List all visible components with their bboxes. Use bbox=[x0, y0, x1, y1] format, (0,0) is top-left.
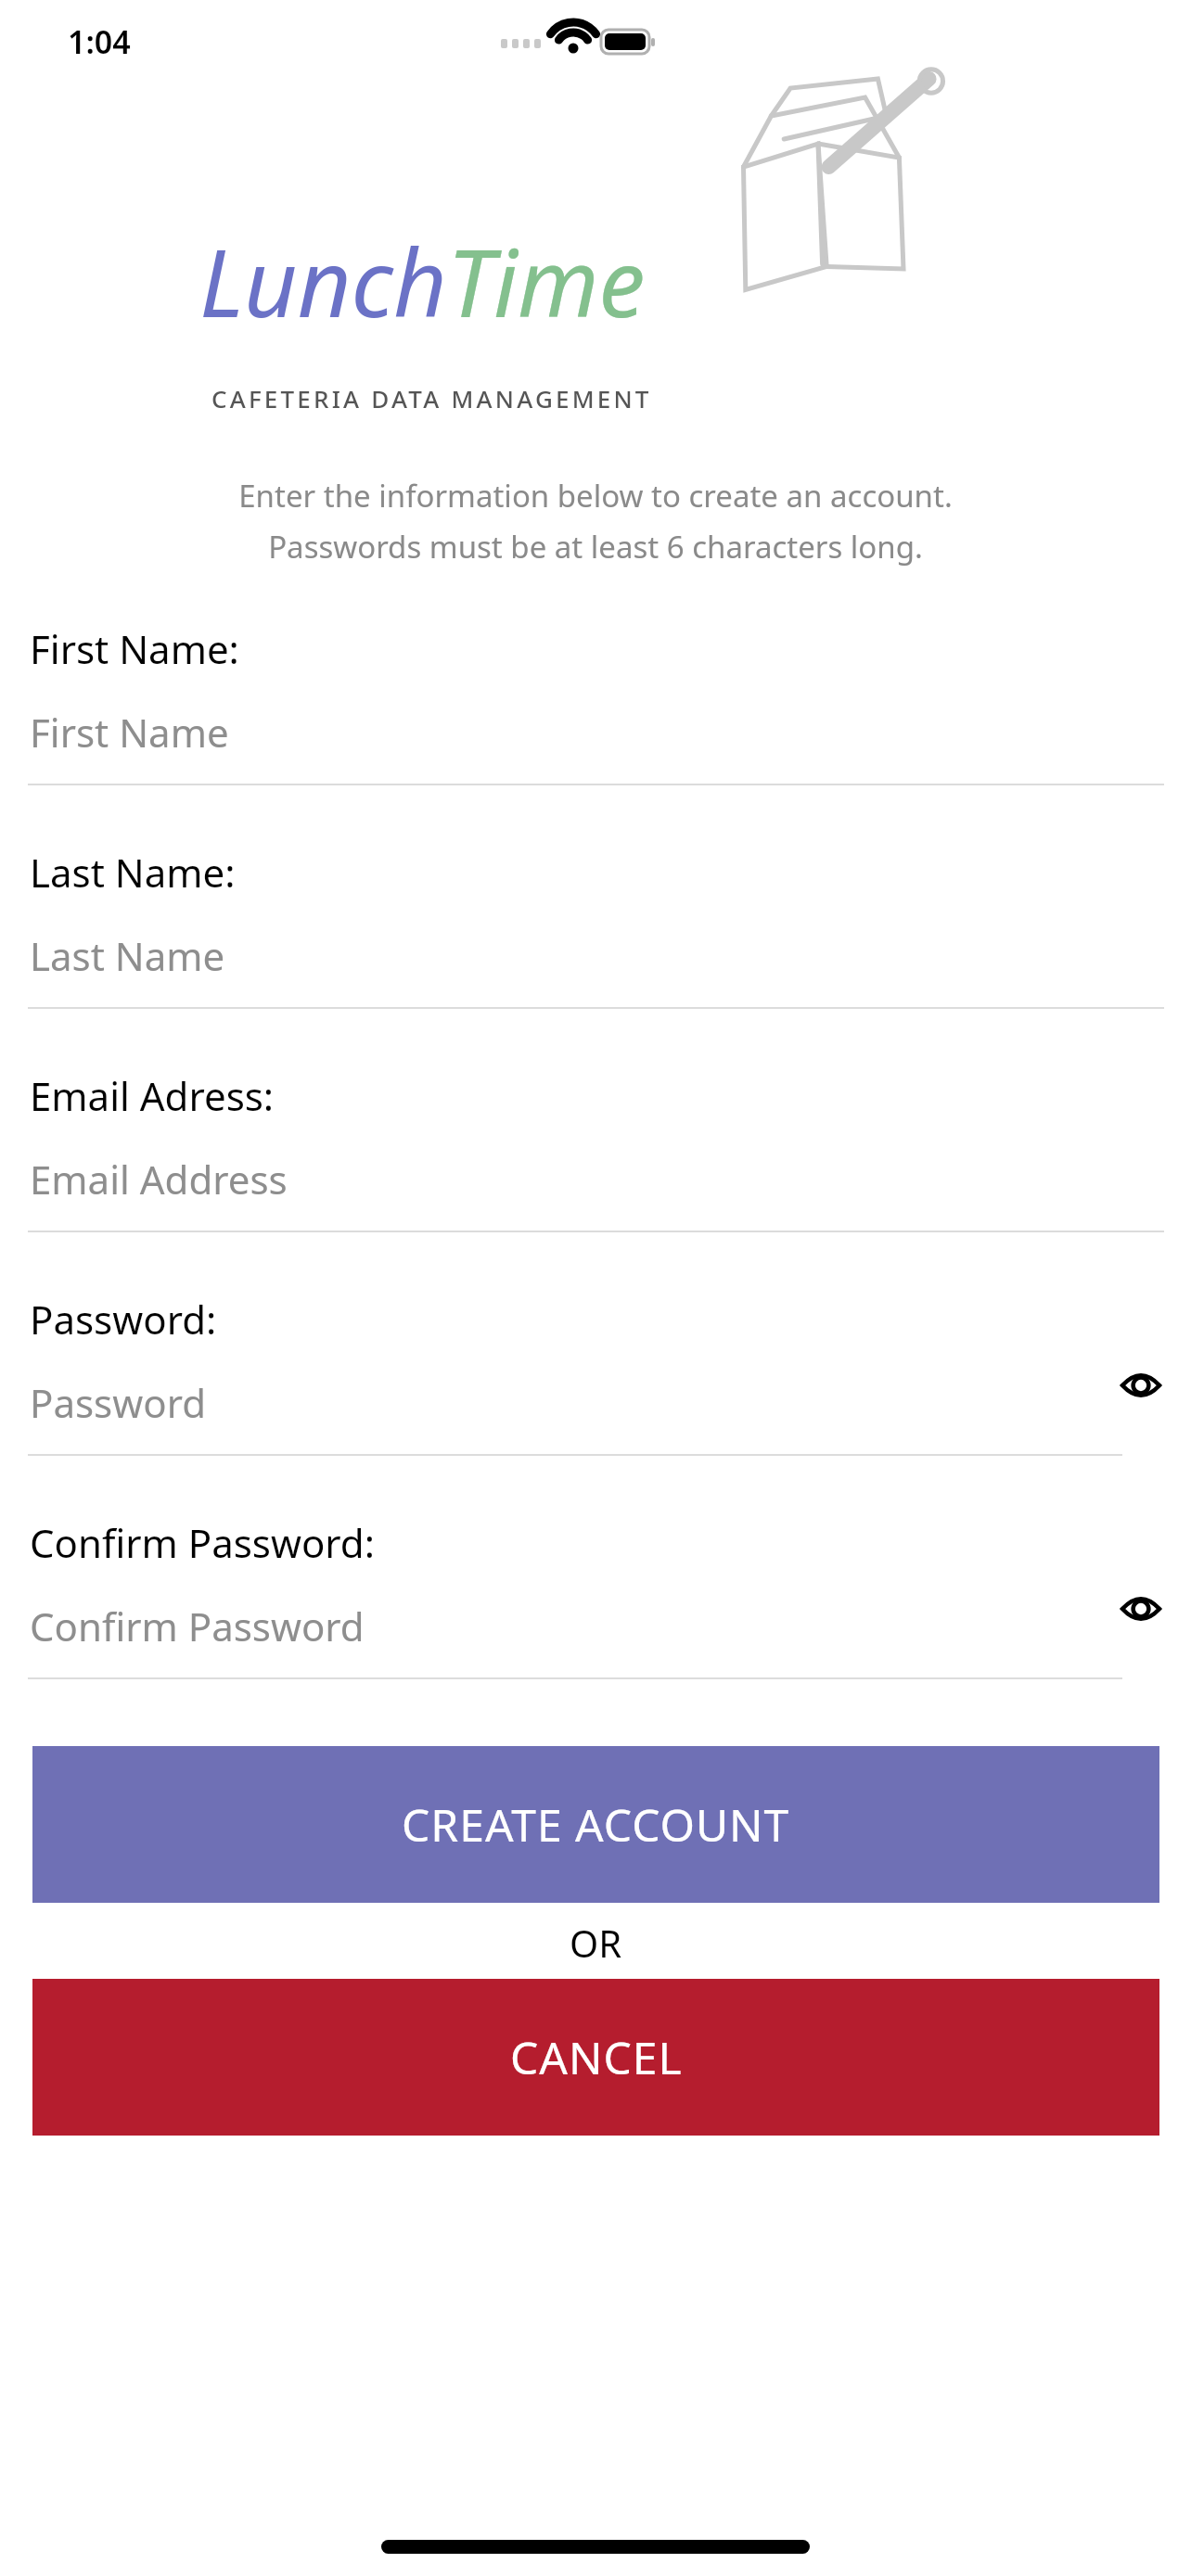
staticText: Confirm Password bbox=[30, 1600, 365, 1652]
button[interactable]: Confirm Password: bbox=[0, 1509, 1191, 1732]
staticText: Lunch bbox=[199, 218, 447, 344]
staticText: CANCEL bbox=[510, 2027, 683, 2087]
staticText: 1:04 bbox=[68, 20, 131, 63]
staticText: First Name: bbox=[30, 622, 239, 675]
staticText: Enter the information below to create an… bbox=[238, 475, 953, 516]
staticText: CAFETERIA DATA MANAGEMENT bbox=[211, 382, 652, 414]
staticText: First Name bbox=[30, 706, 229, 759]
button[interactable]: Last Name: bbox=[0, 838, 1191, 1062]
staticText: Last Name: bbox=[30, 846, 236, 899]
button[interactable]: CREATE ACCOUNT bbox=[32, 1746, 1159, 1903]
staticText: CREATE ACCOUNT bbox=[402, 1794, 790, 1855]
button[interactable]: Password: bbox=[0, 1285, 1191, 1509]
staticText: Last Name bbox=[30, 929, 225, 982]
button[interactable]: CANCEL bbox=[32, 1979, 1159, 2136]
staticText: Time bbox=[447, 218, 646, 344]
staticText: Email Address bbox=[30, 1153, 288, 1205]
button[interactable]: Email Adress: bbox=[0, 1062, 1191, 1285]
button[interactable]: Show password bbox=[1104, 1572, 1178, 1646]
button[interactable]: Show password bbox=[1104, 1348, 1178, 1422]
button[interactable]: First Name: bbox=[0, 615, 1191, 838]
staticText: Passwords must be at least 6 characters … bbox=[268, 526, 923, 567]
staticText: Password bbox=[30, 1376, 206, 1429]
staticText: Password: bbox=[30, 1293, 217, 1345]
staticText: Email Adress: bbox=[30, 1069, 275, 1122]
staticText: OR bbox=[570, 1918, 622, 1968]
staticText: Confirm Password: bbox=[30, 1516, 375, 1569]
